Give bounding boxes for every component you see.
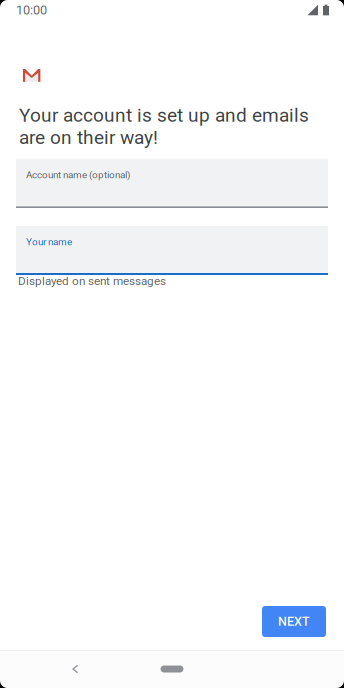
staticText: Your account is set up and emails are on… [19, 104, 309, 149]
staticText: Displayed on sent messages [18, 274, 166, 288]
button[interactable]: Account name (optional) [16, 159, 328, 208]
staticText: Your name [26, 236, 72, 248]
button[interactable]: NEXT [262, 606, 326, 637]
button[interactable]: Back [53, 654, 97, 684]
staticText: Account name (optional) [26, 169, 130, 181]
staticText: NEXT [278, 614, 310, 629]
button[interactable]: Home [146, 654, 198, 684]
staticText: 10:00 [16, 2, 47, 17]
button[interactable]: Your name [16, 226, 328, 275]
